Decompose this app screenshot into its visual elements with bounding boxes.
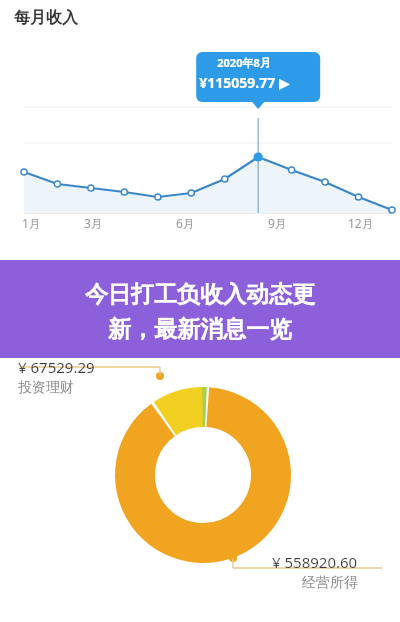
staticText: 每月收入 bbox=[14, 8, 78, 28]
staticText: 6月 bbox=[176, 215, 195, 231]
staticText: 1月 bbox=[22, 215, 41, 231]
staticText: ¥ 67529.29 bbox=[18, 357, 95, 377]
staticText: 经营所得 bbox=[302, 574, 358, 592]
staticText: 投资理财 bbox=[18, 379, 74, 397]
staticText: 2020年8月 bbox=[217, 55, 271, 70]
staticText: ¥ 558920.60 bbox=[272, 552, 358, 572]
button[interactable]: 每月收入 bbox=[0, 0, 400, 245]
staticText: 9月 bbox=[268, 215, 287, 231]
button[interactable]: 今日打工负收入动态更 bbox=[0, 260, 400, 358]
staticText: 3月 bbox=[84, 215, 103, 231]
staticText: 新，最新消息一览 bbox=[108, 315, 292, 344]
staticText: 12月 bbox=[348, 215, 374, 231]
staticText: ¥115059.77 ▶ bbox=[199, 73, 290, 92]
staticText: 今日打工负收入动态更 bbox=[85, 280, 315, 309]
button[interactable]: 收入分类 bbox=[0, 245, 400, 622]
